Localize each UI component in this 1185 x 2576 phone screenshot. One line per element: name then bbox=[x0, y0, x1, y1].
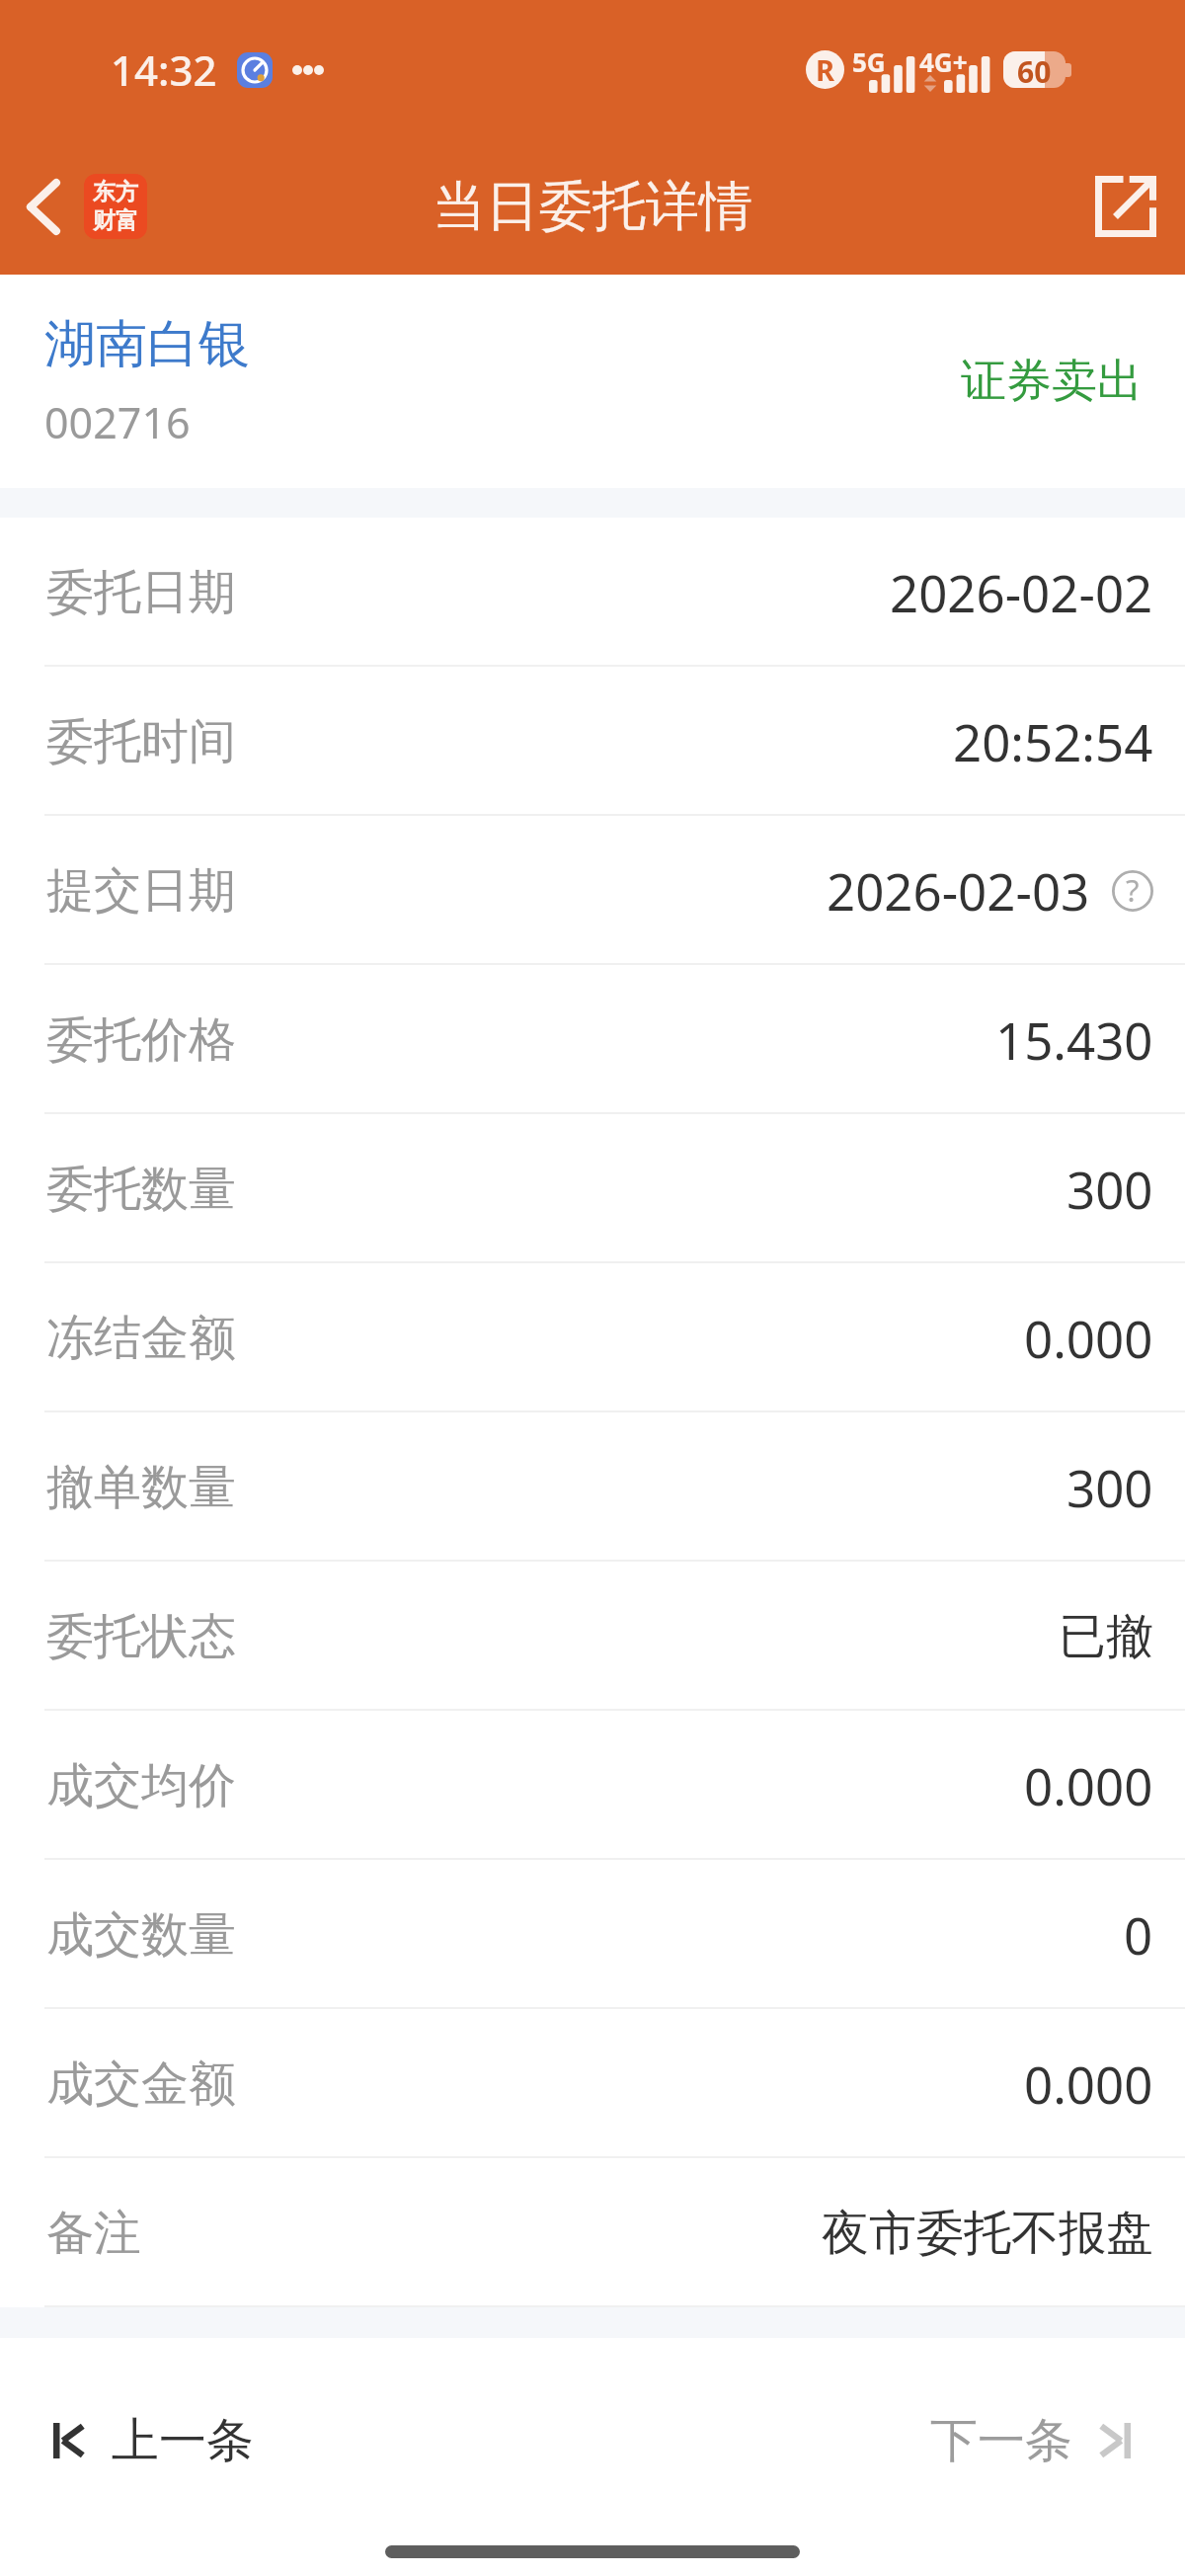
button[interactable]: Share bbox=[1066, 138, 1185, 275]
staticText: 15.430 bbox=[995, 1006, 1153, 1074]
button[interactable]: 委托时间 bbox=[0, 667, 1185, 816]
staticText: 5G bbox=[852, 44, 886, 79]
button[interactable]: 冻结金额 bbox=[0, 1263, 1185, 1412]
staticText: R bbox=[816, 50, 835, 89]
button[interactable]: 提交日期 bbox=[0, 816, 1185, 965]
button[interactable]: 上一条 bbox=[53, 2401, 254, 2480]
staticText: ? bbox=[1126, 869, 1140, 911]
staticText: 14:32 bbox=[111, 41, 217, 98]
button[interactable]: 备注 bbox=[0, 2158, 1185, 2307]
staticText: 成交均价 bbox=[46, 1756, 236, 1815]
button[interactable]: 委托价格 bbox=[0, 965, 1185, 1114]
staticText: 夜市委托不报盘 bbox=[822, 2204, 1153, 2263]
button[interactable]: East Money bbox=[84, 174, 147, 239]
button[interactable]: 成交金额 bbox=[0, 2009, 1185, 2158]
staticText: 0 bbox=[1124, 1900, 1153, 1969]
staticText: 委托状态 bbox=[46, 1607, 236, 1666]
staticText: 下一条 bbox=[930, 2411, 1072, 2470]
staticText: 成交数量 bbox=[46, 1905, 236, 1965]
staticText: 300 bbox=[1066, 1155, 1153, 1223]
staticText: 60 bbox=[1017, 51, 1052, 88]
button[interactable]: 委托状态 bbox=[0, 1562, 1185, 1711]
staticText: 备注 bbox=[46, 2204, 141, 2263]
staticText: 当日委托详情 bbox=[433, 173, 752, 240]
staticText: 2026-02-02 bbox=[890, 558, 1153, 626]
staticText: 上一条 bbox=[112, 2411, 254, 2470]
staticText: 委托数量 bbox=[46, 1160, 236, 1219]
button[interactable]: 委托数量 bbox=[0, 1114, 1185, 1263]
staticText: 20:52:54 bbox=[953, 707, 1153, 775]
staticText: 0.000 bbox=[1024, 1304, 1153, 1372]
staticText: 委托时间 bbox=[46, 712, 236, 771]
staticText: 已撤 bbox=[1059, 1607, 1153, 1666]
staticText: 0.000 bbox=[1024, 2050, 1153, 2118]
staticText: 财富 bbox=[93, 206, 138, 235]
button[interactable]: 撤单数量 bbox=[0, 1412, 1185, 1562]
staticText: 提交日期 bbox=[46, 861, 236, 921]
staticText: 002716 bbox=[44, 393, 191, 451]
staticText: 证券卖出 bbox=[961, 353, 1143, 410]
staticText: 东方 bbox=[93, 178, 138, 206]
staticText: 委托价格 bbox=[46, 1010, 236, 1070]
button[interactable]: 成交均价 bbox=[0, 1711, 1185, 1860]
staticText: 300 bbox=[1066, 1453, 1153, 1521]
button[interactable]: Help bbox=[1112, 870, 1153, 912]
staticText: 4G+ bbox=[919, 44, 968, 79]
staticText: 成交金额 bbox=[46, 2054, 236, 2114]
staticText: 0.000 bbox=[1024, 1751, 1153, 1819]
staticText: 冻结金额 bbox=[46, 1309, 236, 1368]
staticText: 撤单数量 bbox=[46, 1458, 236, 1517]
button[interactable]: 湖南白银 bbox=[0, 275, 1185, 488]
button[interactable]: 委托日期 bbox=[0, 518, 1185, 667]
button[interactable]: 成交数量 bbox=[0, 1860, 1185, 2009]
staticText: 湖南白银 bbox=[44, 312, 250, 377]
button[interactable]: Back bbox=[0, 138, 87, 275]
button[interactable]: 下一条 bbox=[930, 2401, 1131, 2480]
staticText: 委托日期 bbox=[46, 563, 236, 622]
staticText: 2026-02-03 bbox=[827, 856, 1090, 925]
